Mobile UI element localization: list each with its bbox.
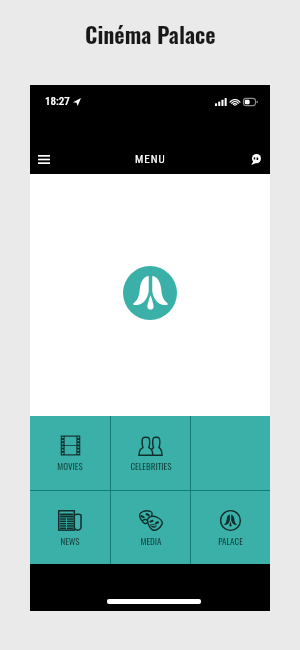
staticText: MEDIA — [140, 534, 162, 547]
staticText: CELEBRITIES — [130, 459, 172, 472]
button[interactable]: Chat — [239, 142, 273, 176]
button[interactable]: PALACE — [191, 491, 270, 564]
button[interactable]: CELEBRITIES — [111, 416, 190, 490]
staticText: NEWS — [60, 534, 80, 547]
button[interactable]: NEWS — [30, 491, 110, 564]
button[interactable]: MOVIES — [30, 416, 110, 490]
staticText: MENU — [135, 153, 166, 166]
staticText: PALACE — [218, 534, 243, 547]
staticText: MOVIES — [57, 459, 83, 472]
button[interactable]: Menu — [27, 142, 61, 176]
staticText: 18:27 — [45, 95, 70, 108]
staticText: Cinéma Palace — [85, 18, 216, 51]
button[interactable]: MEDIA — [111, 491, 190, 564]
